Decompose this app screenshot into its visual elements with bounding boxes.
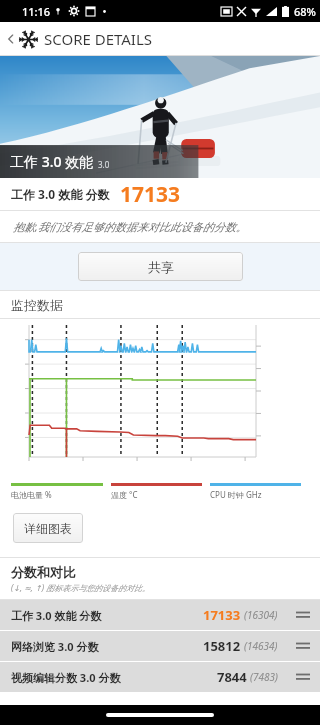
staticText: 共享 (148, 259, 174, 275)
staticText: 工作 3.0 效能 分数 (11, 186, 110, 202)
staticText: (16304) (244, 608, 278, 622)
staticText: 视频编辑分数 3.0 分数 (11, 670, 121, 685)
staticText: 7844 (217, 668, 247, 686)
staticText: 68% (294, 4, 316, 19)
button[interactable]: 网络浏览 3.0 分数 (0, 631, 320, 661)
staticText: 抱歉,我们没有足够的数据来对比此设备的分数。 (13, 219, 247, 234)
staticText: 工作 3.0 效能 分数 (11, 608, 102, 623)
staticText: CPU 时钟 GHz (210, 489, 262, 500)
staticText: (7483) (250, 670, 278, 684)
staticText: (14634) (244, 639, 278, 653)
staticText: 3.0 (98, 159, 110, 170)
staticText: 11:16 (22, 4, 51, 19)
staticText: 监控数据 (11, 297, 63, 313)
staticText: 详细图表 (24, 521, 72, 536)
staticText: 工作 3.0 效能 (10, 152, 94, 171)
staticText: 17133 (120, 180, 181, 209)
staticText: SCORE DETAILS (44, 29, 153, 49)
button[interactable]: 工作 3.0 效能 分数 (0, 600, 320, 630)
staticText: 15812 (203, 637, 241, 655)
staticText: 温度 °C (111, 489, 138, 500)
button[interactable]: 视频编辑分数 3.0 分数 (0, 662, 320, 692)
staticText: 网络浏览 3.0 分数 (11, 639, 99, 654)
button[interactable]: Back (4, 29, 153, 49)
staticText: 17133 (203, 606, 241, 624)
button[interactable]: 详细图表 (13, 513, 83, 543)
staticText: 电池电量 % (11, 489, 52, 500)
staticText: (↓, ≈, ↑) 图标表示与您的设备的对比。 (11, 582, 151, 593)
staticText: 分数和对比 (11, 564, 76, 580)
button[interactable]: Home (106, 713, 214, 717)
button[interactable]: 共享 (78, 252, 243, 281)
